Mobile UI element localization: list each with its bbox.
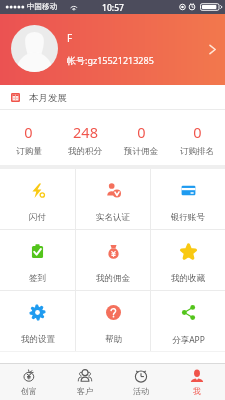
button[interactable]: 我 bbox=[169, 364, 225, 400]
button[interactable]: 闪付 bbox=[0, 169, 75, 229]
staticText: F bbox=[67, 31, 73, 45]
staticText: 我的佣金 bbox=[96, 273, 130, 284]
button[interactable]: 0 bbox=[0, 110, 57, 165]
staticText: 帐号:gz15521213285 bbox=[67, 54, 154, 66]
staticText: 闪付 bbox=[29, 212, 46, 223]
staticText: 活动 bbox=[133, 386, 149, 396]
staticText: 我的积分 bbox=[68, 146, 102, 157]
staticText: 10:57 bbox=[102, 2, 124, 14]
button[interactable]: 签到 bbox=[0, 230, 75, 290]
staticText: 分享APP bbox=[172, 334, 205, 346]
other: 查看账户详情 bbox=[208, 42, 217, 57]
staticText: 0 bbox=[193, 122, 202, 142]
staticText: 我 bbox=[193, 386, 201, 396]
staticText: 预计佣金 bbox=[124, 146, 158, 157]
button[interactable]: 客户 bbox=[57, 364, 113, 400]
staticText: 中国移动 bbox=[27, 2, 57, 11]
button[interactable]: 活动 bbox=[113, 364, 169, 400]
button[interactable]: 248 bbox=[57, 110, 113, 165]
staticText: 我的收藏 bbox=[171, 273, 205, 284]
staticText: 248 bbox=[73, 122, 98, 142]
staticText: 我的设置 bbox=[21, 334, 55, 345]
staticText: 0 bbox=[24, 122, 33, 142]
button[interactable]: 帮助 bbox=[76, 291, 150, 351]
button[interactable]: 我的设置 bbox=[0, 291, 75, 351]
button[interactable]: 0 bbox=[113, 110, 169, 165]
button[interactable]: 我的佣金 bbox=[76, 230, 150, 290]
staticText: 本月发展 bbox=[29, 92, 67, 104]
button[interactable]: 我的收藏 bbox=[151, 230, 225, 290]
staticText: 客户 bbox=[77, 386, 93, 396]
staticText: 创富 bbox=[21, 386, 37, 396]
button[interactable]: F bbox=[0, 14, 225, 85]
button[interactable]: 实名认证 bbox=[76, 169, 150, 229]
button[interactable]: 创富 bbox=[0, 364, 57, 400]
staticText: 0 bbox=[137, 122, 146, 142]
button[interactable]: 银行账号 bbox=[151, 169, 225, 229]
button[interactable]: 0 bbox=[169, 110, 225, 165]
staticText: 帮助 bbox=[105, 334, 122, 345]
staticText: 签到 bbox=[29, 273, 46, 284]
staticText: 订购量 bbox=[16, 146, 42, 157]
button[interactable]: 分享APP bbox=[151, 291, 225, 351]
staticText: 银行账号 bbox=[171, 212, 205, 223]
staticText: 订购排名 bbox=[180, 146, 214, 157]
staticText: 实名认证 bbox=[96, 212, 130, 223]
